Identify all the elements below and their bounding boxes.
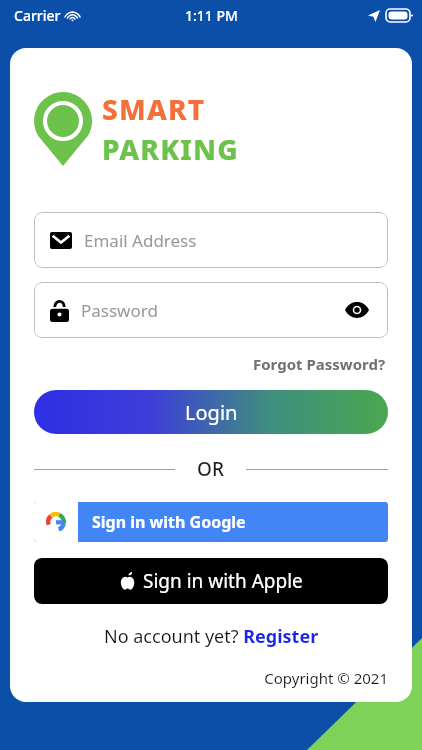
button[interactable]: Password bbox=[34, 282, 388, 338]
button[interactable]: Login bbox=[34, 390, 388, 434]
staticText: Sign in with Apple bbox=[143, 568, 303, 594]
staticText: OR bbox=[197, 456, 224, 482]
staticText: Carrier bbox=[14, 6, 61, 25]
staticText: Login bbox=[185, 399, 238, 426]
button[interactable]: Show password bbox=[342, 295, 372, 325]
staticText: Forgot Password? bbox=[253, 354, 386, 374]
staticText: 1:11 PM bbox=[185, 6, 238, 25]
staticText: No account yet? Register bbox=[104, 624, 319, 649]
staticText: Email Address bbox=[84, 229, 372, 252]
button[interactable]: Forgot Password? bbox=[251, 352, 388, 376]
button[interactable]: Sign in with Apple bbox=[34, 558, 388, 604]
button[interactable]: Email Address bbox=[34, 212, 388, 268]
staticText: Password bbox=[81, 299, 342, 322]
staticText: PARKING bbox=[102, 130, 239, 168]
staticText: SMART bbox=[102, 90, 206, 128]
button[interactable]: No account yet? Register bbox=[34, 624, 388, 649]
button[interactable]: Sign in with Google bbox=[34, 502, 388, 542]
staticText: Sign in with Google bbox=[92, 511, 246, 533]
staticText: Copyright © 2021 bbox=[34, 668, 388, 688]
